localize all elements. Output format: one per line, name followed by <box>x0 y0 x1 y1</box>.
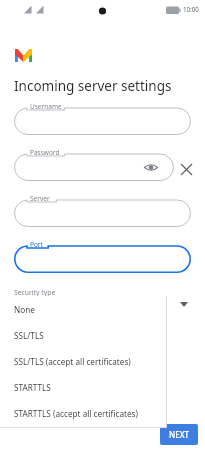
staticText: Server <box>30 194 50 203</box>
button[interactable]: SSL/TLS <box>0 322 167 348</box>
staticText: Password <box>30 148 60 157</box>
staticText: NEXT <box>169 429 190 440</box>
staticText: None <box>14 304 35 315</box>
button[interactable]: Password <box>14 148 174 181</box>
staticText: Port <box>30 240 43 249</box>
button[interactable]: STARTTLS <box>0 374 167 400</box>
staticText: SSL/TLS (accept all certificates) <box>14 356 131 367</box>
button[interactable]: STARTTLS (accept all certificates) <box>0 400 167 426</box>
staticText: 10:00 <box>183 5 199 13</box>
button[interactable]: NEXT <box>160 424 198 445</box>
button[interactable]: SSL/TLS (accept all certificates) <box>0 348 167 374</box>
button[interactable]: Username <box>14 102 191 135</box>
button[interactable]: Open security type dropdown <box>176 296 192 312</box>
staticText: Username <box>30 102 62 111</box>
staticText: STARTTLS <box>14 382 51 393</box>
staticText: SSL/TLS <box>14 330 44 341</box>
staticText: Incoming server settings <box>14 77 172 95</box>
button[interactable]: Server <box>14 194 191 227</box>
staticText: Security type <box>14 288 56 297</box>
button[interactable]: Clear password <box>177 160 196 179</box>
button[interactable]: Port <box>14 240 191 273</box>
button[interactable]: None <box>0 296 167 322</box>
staticText: STARTTLS (accept all certificates) <box>14 408 138 419</box>
